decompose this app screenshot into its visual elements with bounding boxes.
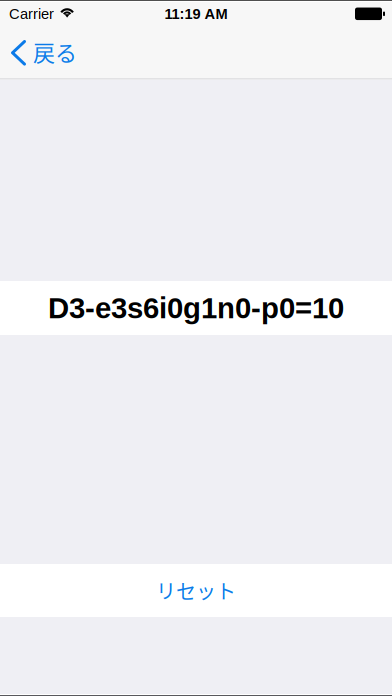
- staticText: 戻る: [33, 36, 77, 67]
- button[interactable]: 戻る: [0, 26, 87, 80]
- staticText: D3-e3s6i0g1n0-p0=10: [48, 292, 344, 324]
- staticText: 11:19 AM: [164, 6, 227, 22]
- staticText: Carrier: [9, 6, 54, 22]
- staticText: リセット: [156, 576, 236, 605]
- button[interactable]: リセット: [0, 564, 392, 617]
